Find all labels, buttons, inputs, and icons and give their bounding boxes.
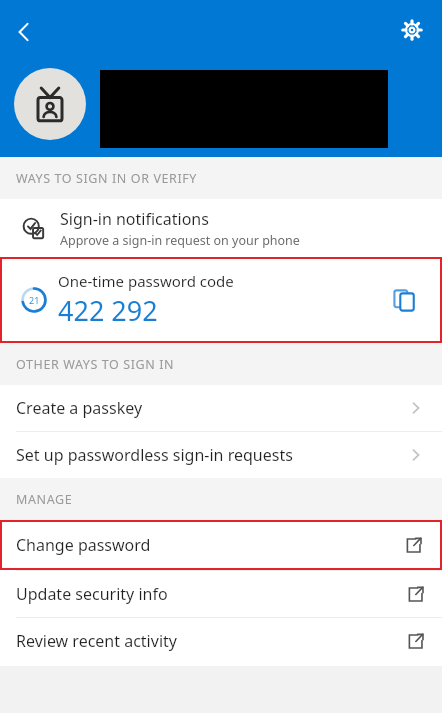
button[interactable]: Review recent activity xyxy=(0,618,442,664)
button[interactable]: Set up passwordless sign-in requests xyxy=(0,432,442,478)
staticText: Sign-in notifications xyxy=(60,208,209,230)
button[interactable]: Settings xyxy=(390,8,434,52)
button[interactable]: Profile photo xyxy=(14,68,86,140)
staticText: 21 xyxy=(29,294,40,306)
staticText: Update security info xyxy=(16,583,168,605)
button[interactable]: Update security info xyxy=(0,571,442,617)
button[interactable]: 21 xyxy=(2,259,440,341)
button[interactable]: Copy code xyxy=(384,280,424,320)
button[interactable]: Sign-in notifications xyxy=(0,199,442,257)
staticText: Change password xyxy=(16,534,151,556)
staticText: WAYS TO SIGN IN OR VERIFY xyxy=(16,170,198,187)
staticText: Approve a sign-in request on your phone xyxy=(60,232,300,249)
button[interactable]: Back xyxy=(0,8,48,56)
button[interactable]: Create a passkey xyxy=(0,385,442,431)
staticText: 422 292 xyxy=(58,292,158,329)
staticText: MANAGE xyxy=(16,491,73,508)
staticText: OTHER WAYS TO SIGN IN xyxy=(16,356,175,373)
staticText: Set up passwordless sign-in requests xyxy=(16,444,293,466)
staticText: Review recent activity xyxy=(16,630,177,652)
staticText: One-time password code xyxy=(58,271,234,291)
staticText: Create a passkey xyxy=(16,397,143,419)
button[interactable]: Change password xyxy=(2,522,440,568)
